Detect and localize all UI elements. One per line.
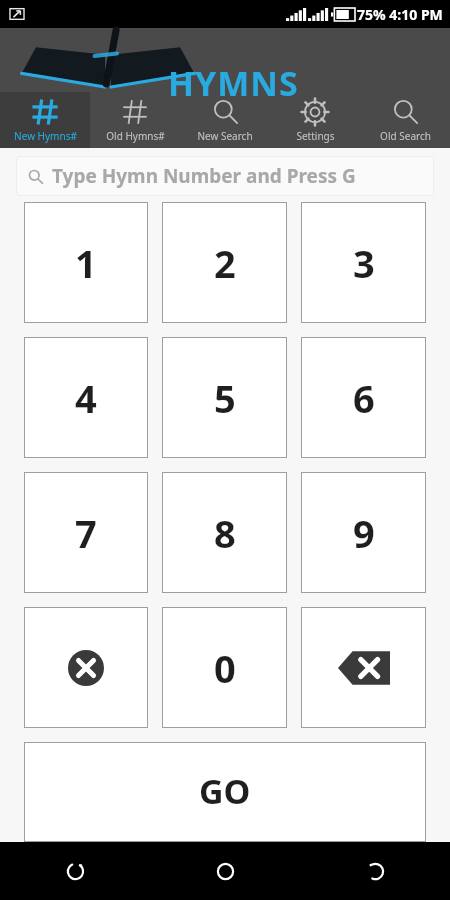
button[interactable]: Home bbox=[150, 842, 300, 900]
staticText: Settings bbox=[296, 129, 335, 143]
button[interactable]: Settings bbox=[270, 92, 360, 148]
button[interactable]: 1 bbox=[24, 202, 148, 323]
staticText: 6 bbox=[353, 372, 375, 424]
button[interactable]: New Search bbox=[180, 92, 270, 148]
button[interactable]: Old Hymns# bbox=[90, 92, 180, 148]
staticText: HYMNS bbox=[168, 60, 299, 106]
button[interactable]: Type Hymn Number and Press G bbox=[16, 156, 434, 196]
staticText: 9 bbox=[353, 507, 375, 559]
button[interactable]: 5 bbox=[162, 337, 287, 458]
button[interactable]: 8 bbox=[162, 472, 287, 593]
button[interactable]: 7 bbox=[24, 472, 148, 593]
button[interactable]: New Hymns# bbox=[0, 92, 90, 148]
staticText: 1 bbox=[75, 237, 97, 289]
staticText: New Search bbox=[197, 129, 253, 143]
staticText: Old Hymns# bbox=[106, 129, 165, 143]
staticText: 5 bbox=[214, 372, 236, 424]
staticText: 2 bbox=[214, 237, 236, 289]
staticText: 8 bbox=[214, 507, 236, 559]
button[interactable]: 4 bbox=[24, 337, 148, 458]
button[interactable]: Old Search bbox=[360, 92, 450, 148]
staticText: GO bbox=[199, 768, 251, 814]
staticText: 3 bbox=[353, 237, 375, 289]
button[interactable]: Back bbox=[300, 842, 450, 900]
staticText: 4 bbox=[75, 372, 97, 424]
button[interactable]: Backspace bbox=[301, 607, 426, 728]
button[interactable]: 2 bbox=[162, 202, 287, 323]
staticText: New Hymns# bbox=[14, 129, 77, 143]
button[interactable]: Clear bbox=[24, 607, 148, 728]
staticText: 75% 4:10 PM bbox=[357, 5, 443, 24]
staticText: Type Hymn Number and Press G bbox=[52, 163, 356, 189]
button[interactable]: 9 bbox=[301, 472, 426, 593]
button[interactable]: 6 bbox=[301, 337, 426, 458]
button[interactable]: 3 bbox=[301, 202, 426, 323]
staticText: 7 bbox=[75, 507, 97, 559]
button[interactable]: 0 bbox=[162, 607, 287, 728]
button[interactable]: GO bbox=[24, 742, 426, 842]
staticText: 0 bbox=[214, 642, 236, 694]
button[interactable]: Recents bbox=[0, 842, 150, 900]
staticText: Old Search bbox=[380, 129, 431, 143]
